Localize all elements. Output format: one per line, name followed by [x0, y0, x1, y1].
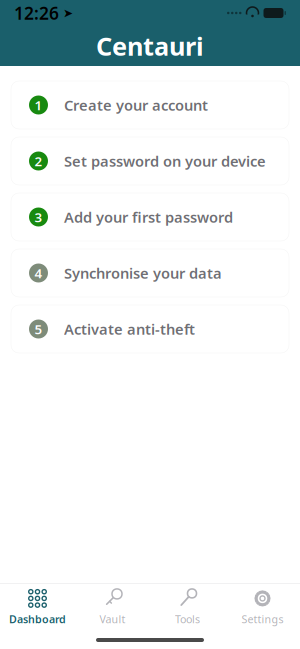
button[interactable]: 4 [11, 249, 289, 297]
staticText: 5 [34, 320, 42, 338]
button[interactable]: 1 [11, 81, 289, 129]
button[interactable]: Tools [150, 584, 225, 630]
button[interactable]: Dashboard [0, 584, 75, 630]
staticText: Tools [175, 612, 200, 626]
button[interactable]: 2 [11, 137, 289, 185]
staticText: 3 [34, 208, 42, 226]
staticText: Dashboard [9, 612, 66, 626]
button[interactable]: 3 [11, 193, 289, 241]
staticText: Vault [99, 612, 125, 626]
staticText: Add your first password [64, 207, 233, 227]
staticText: Activate anti-theft [64, 319, 195, 339]
staticText: 2 [34, 152, 42, 170]
staticText: Set password on your device [64, 151, 266, 171]
staticText: Create your account [64, 95, 208, 115]
staticText: Centauri [96, 29, 204, 63]
staticText: 12:26 [14, 1, 59, 24]
button[interactable]: Vault [75, 584, 150, 630]
staticText: Settings [241, 612, 283, 626]
staticText: 1 [34, 96, 42, 114]
staticText: ➤ [59, 6, 73, 20]
staticText: Synchronise your data [64, 263, 222, 283]
button[interactable]: Settings [225, 584, 300, 630]
button[interactable]: 5 [11, 305, 289, 353]
staticText: 4 [34, 264, 42, 282]
